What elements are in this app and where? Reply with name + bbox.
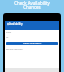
button[interactable]: From [6,31,58,35]
staticText: From [6,31,12,34]
staticText: To [6,36,9,39]
button[interactable]: Menu [6,22,9,25]
staticText: CHECK AVAILABILITY [23,42,42,45]
staticText: Check Availability [0,0,64,6]
button[interactable]: To [6,36,58,40]
staticText: Recent searches [6,48,23,51]
button[interactable]: Menu [5,21,59,30]
staticText: Availability [9,22,23,26]
button[interactable]: CHECK AVAILABILITY [6,42,58,45]
staticText: Chances [0,4,64,10]
